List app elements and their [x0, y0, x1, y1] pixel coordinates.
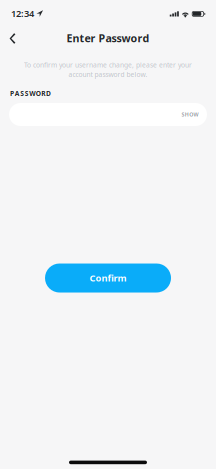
staticText: To confirm your username change, please …: [24, 61, 192, 69]
staticText: account password below.: [68, 70, 147, 79]
staticText: 12:34: [11, 7, 34, 20]
staticText: SHOW: [182, 111, 198, 118]
button[interactable]: Confirm: [45, 263, 171, 292]
button[interactable]: Password: [9, 103, 207, 126]
staticText: Confirm: [89, 272, 126, 284]
staticText: Enter Password: [66, 31, 149, 45]
button[interactable]: SHOW: [173, 103, 207, 126]
staticText: PASSWORD: [10, 89, 51, 98]
button[interactable]: Back: [0, 25, 24, 51]
